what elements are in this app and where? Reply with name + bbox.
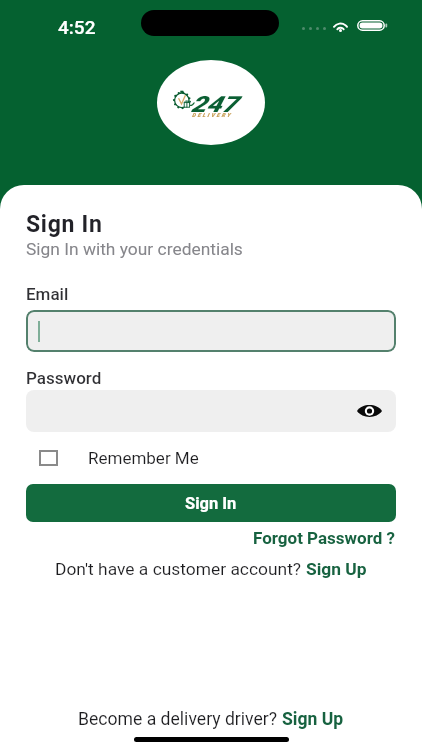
button[interactable]: Sign In — [26, 484, 396, 522]
button[interactable] — [39, 450, 58, 466]
button[interactable]: Sign Up — [282, 709, 344, 730]
staticText: 4:52 — [58, 16, 96, 38]
staticText: Sign In — [185, 494, 237, 513]
button[interactable]: Forgot Password ? — [253, 528, 396, 548]
staticText: Password — [26, 368, 102, 388]
staticText: Sign In with your credentials — [26, 239, 243, 259]
button[interactable]: Sign Up — [306, 559, 367, 579]
staticText: Become a delivery driver? — [78, 709, 282, 730]
staticText: DELIVERY — [192, 112, 233, 118]
staticText: Remember Me — [88, 448, 199, 468]
staticText: Sign In — [26, 211, 103, 238]
button[interactable] — [26, 310, 396, 352]
button[interactable]: Show password — [356, 398, 382, 424]
staticText: 247 — [191, 92, 238, 119]
staticText: Don't have a customer account? — [55, 559, 306, 579]
staticText: Email — [26, 284, 69, 304]
button[interactable]: Show password — [26, 390, 396, 432]
